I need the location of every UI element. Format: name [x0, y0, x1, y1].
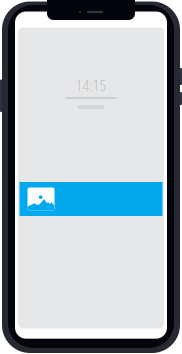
staticText: 14:15 [75, 75, 106, 95]
button[interactable]: Photo banner [19, 182, 162, 216]
